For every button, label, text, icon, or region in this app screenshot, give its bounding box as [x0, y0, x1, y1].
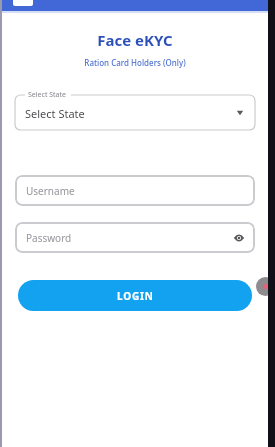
button[interactable]: LOGIN [18, 280, 252, 311]
staticText: Select State [28, 90, 67, 100]
button[interactable]: Username [15, 175, 255, 206]
button[interactable]: Password [15, 222, 255, 253]
button[interactable]: Select State [15, 90, 255, 130]
button[interactable]: Accessibility assistant [256, 277, 275, 296]
staticText: Face eKYC [2, 30, 268, 50]
staticText: Select State [25, 106, 85, 121]
staticText: Ration Card Holders (Only) [2, 57, 268, 68]
staticText: LOGIN [117, 289, 154, 303]
button[interactable]: Show password [229, 228, 249, 248]
staticText: Username [26, 184, 75, 198]
staticText: Password [26, 231, 72, 245]
